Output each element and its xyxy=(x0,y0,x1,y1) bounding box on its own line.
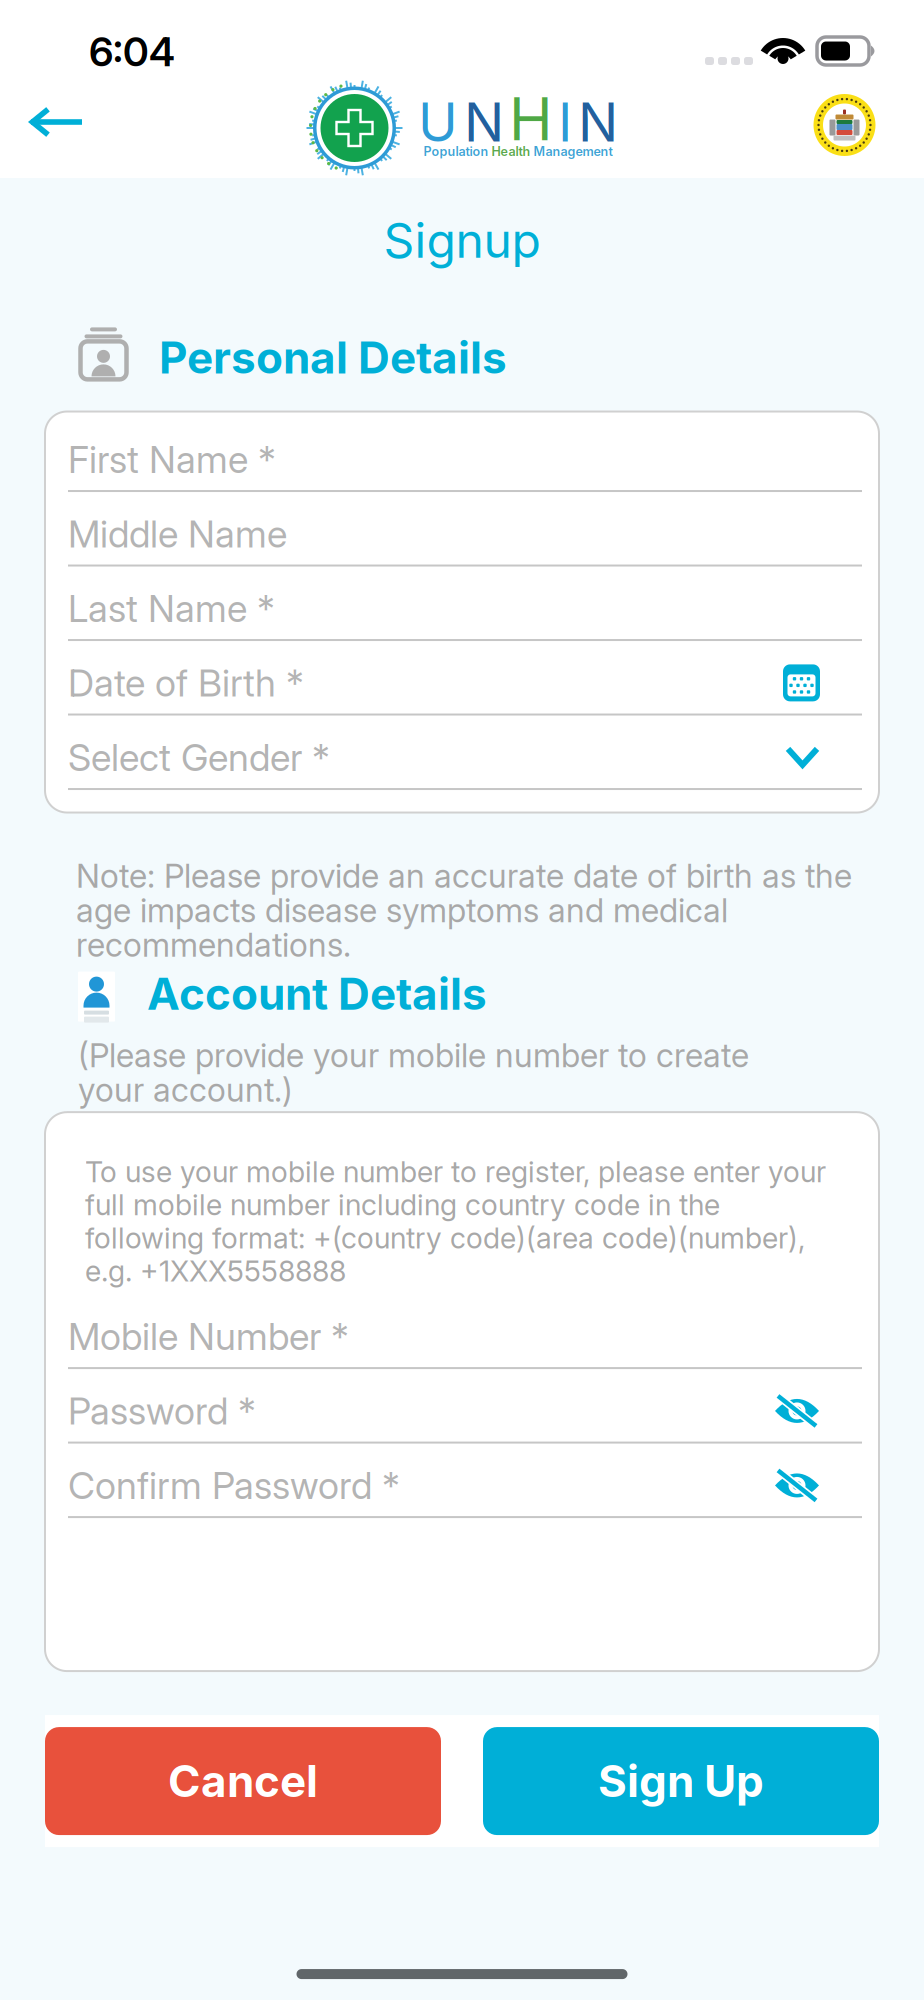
staticText: N xyxy=(578,90,618,154)
staticText: Signup xyxy=(383,215,540,265)
button[interactable]: Ministry of Health xyxy=(813,80,924,176)
staticText: U xyxy=(418,90,458,154)
staticText: Note: Please provide an accurate date of… xyxy=(76,858,852,962)
staticText: H xyxy=(509,83,553,154)
staticText: Management xyxy=(533,144,612,159)
staticText: To use your mobile number to register, p… xyxy=(85,1155,826,1288)
button[interactable]: Sign Up xyxy=(483,1727,879,1835)
button[interactable]: Back xyxy=(0,78,110,178)
staticText: I xyxy=(558,90,572,154)
staticText: Last Name * xyxy=(68,589,275,628)
staticText: First Name * xyxy=(68,440,276,479)
staticText: Middle Name xyxy=(68,514,287,553)
staticText: Confirm Password * xyxy=(68,1466,400,1505)
staticText: Password * xyxy=(68,1391,256,1431)
button[interactable]: Cancel xyxy=(45,1727,441,1835)
staticText: Personal Details xyxy=(159,334,507,381)
staticText: Date of Birth * xyxy=(68,663,304,702)
staticText: Cancel xyxy=(168,1758,318,1804)
staticText: Health xyxy=(491,144,533,159)
staticText: Select Gender * xyxy=(68,738,330,777)
staticText: Mobile Number * xyxy=(68,1317,349,1356)
staticText: Population xyxy=(423,144,491,159)
staticText: 6:04 xyxy=(89,28,175,76)
staticText: Sign Up xyxy=(598,1758,764,1804)
staticText: N xyxy=(464,90,504,154)
staticText: (Please provide your mobile number to cr… xyxy=(78,1038,749,1107)
staticText: Account Details xyxy=(147,971,487,1017)
